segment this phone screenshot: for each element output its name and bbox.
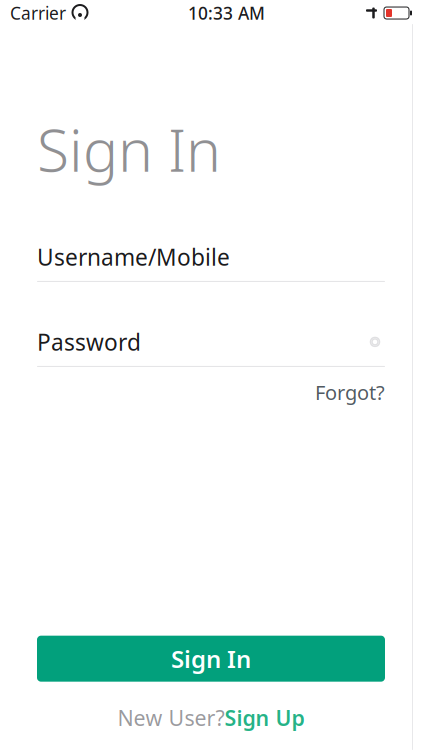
button[interactable]: Sign In xyxy=(37,636,385,682)
button[interactable]: Show password xyxy=(365,334,385,350)
staticText: Carrier xyxy=(10,1,66,24)
staticText: Sign In xyxy=(171,643,251,675)
staticText: Sign In xyxy=(37,110,221,188)
staticText: Forgot? xyxy=(315,379,385,405)
button[interactable]: Forgot? xyxy=(315,379,385,405)
staticText: Sign Up xyxy=(224,704,304,732)
staticText: Username/Mobile xyxy=(37,242,230,272)
staticText: New User? xyxy=(117,704,224,732)
button[interactable]: New User? xyxy=(117,704,304,732)
staticText: 10:33 AM xyxy=(188,1,265,24)
staticText: Password xyxy=(37,327,141,357)
